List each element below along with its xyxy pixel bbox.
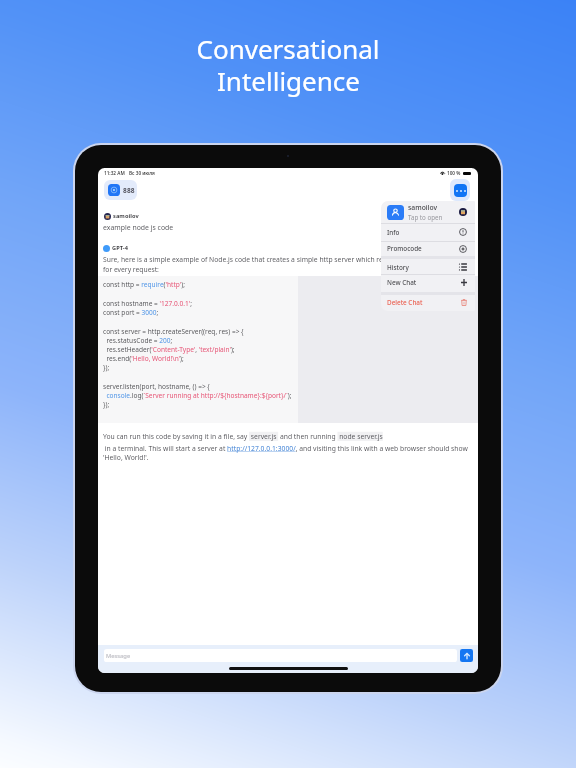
staticText: Sure, here is a simple example of Node.j… xyxy=(103,255,467,264)
staticText: Delete Chat xyxy=(387,298,423,307)
staticText: 888 xyxy=(123,186,135,195)
staticText: samoilov xyxy=(113,212,139,220)
staticText: const hostname = '127.0.0.1'; xyxy=(103,299,192,308)
staticText: res.setHeader('Content-Type', 'text/plai… xyxy=(103,345,235,354)
staticText: const server = http.createServer((req, r… xyxy=(103,327,244,336)
staticText: server.listen(port, hostname, () => { xyxy=(103,382,210,391)
staticText: res.end('Hello, World!\n'); xyxy=(103,354,184,363)
staticText: console.log(`Server running at http://${… xyxy=(103,391,292,400)
button[interactable]: 888 xyxy=(104,180,137,200)
staticText: for every request: xyxy=(103,265,159,274)
button[interactable]: Message xyxy=(104,649,457,662)
button[interactable]: History xyxy=(381,259,475,275)
staticText: Message xyxy=(106,652,131,660)
staticText: History xyxy=(387,263,409,272)
button[interactable]: Info xyxy=(381,223,475,241)
staticText: GPT-4 xyxy=(112,244,129,252)
staticText: in a terminal. This will start a server … xyxy=(103,444,468,453)
staticText: 11:32 AM xyxy=(104,170,125,176)
staticText: const http = require('http'); xyxy=(103,280,185,289)
staticText: const port = 3000; xyxy=(103,308,159,317)
staticText: samoilov xyxy=(408,203,438,212)
staticText: New Chat xyxy=(387,278,417,287)
button[interactable]: samoilov xyxy=(381,201,475,223)
staticText: Promocode xyxy=(387,244,422,253)
staticText: 100 % xyxy=(447,170,461,176)
staticText: Info xyxy=(387,228,400,237)
staticText: You can run this code by saving it in a … xyxy=(103,432,385,441)
button[interactable]: More options xyxy=(450,179,470,201)
staticText: Вс 30 июля xyxy=(129,170,155,176)
staticText: example node js code xyxy=(103,223,174,232)
staticText: 'Hello, World!'. xyxy=(103,453,149,462)
staticText: res.statusCode = 200; xyxy=(103,336,173,345)
staticText: Conversational xyxy=(196,31,380,66)
staticText: Tap to open xyxy=(408,213,443,221)
button[interactable]: Send xyxy=(460,649,473,662)
button[interactable]: Delete Chat xyxy=(381,294,475,311)
button[interactable]: New Chat xyxy=(381,274,475,291)
staticText: }); xyxy=(103,400,110,409)
staticText: }); xyxy=(103,363,110,372)
staticText: Intelligence xyxy=(217,63,360,98)
button[interactable]: Promocode xyxy=(381,241,475,256)
